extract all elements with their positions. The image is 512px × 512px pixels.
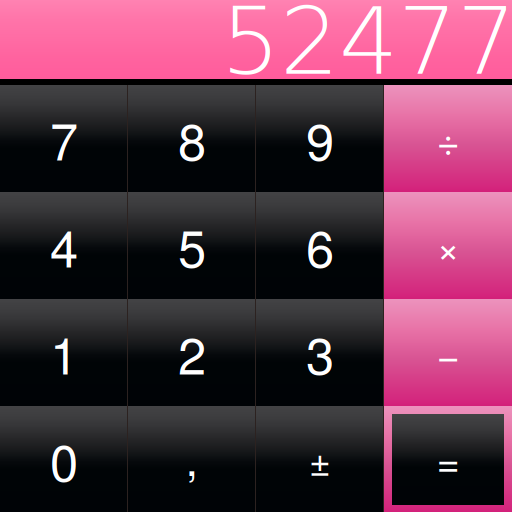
button[interactable]: ÷ bbox=[384, 85, 512, 192]
staticText: ± bbox=[309, 433, 331, 486]
button[interactable]: − bbox=[384, 299, 512, 406]
staticText: 9 bbox=[306, 102, 334, 175]
staticText: 2 bbox=[178, 316, 206, 389]
staticText: 0 bbox=[50, 423, 78, 496]
staticText: 8 bbox=[178, 102, 206, 175]
button[interactable]: 3 bbox=[256, 299, 384, 406]
button[interactable]: 2 bbox=[128, 299, 256, 406]
button[interactable]: 6 bbox=[256, 192, 384, 299]
button[interactable]: ± bbox=[256, 406, 384, 512]
staticText: 7 bbox=[50, 102, 78, 175]
button[interactable]: 9 bbox=[256, 85, 384, 192]
staticText: 52477 bbox=[221, 0, 512, 96]
button[interactable]: = bbox=[384, 406, 512, 512]
staticText: 5 bbox=[178, 209, 206, 282]
button[interactable]: 1 bbox=[0, 299, 128, 406]
button[interactable]: 5 bbox=[128, 192, 256, 299]
staticText: 3 bbox=[306, 316, 334, 389]
button[interactable]: , bbox=[128, 406, 256, 512]
button[interactable]: 0 bbox=[0, 406, 128, 512]
staticText: , bbox=[185, 424, 198, 489]
button[interactable]: 7 bbox=[0, 85, 128, 192]
button[interactable]: 4 bbox=[0, 192, 128, 299]
staticText: 1 bbox=[50, 316, 78, 389]
button[interactable]: × bbox=[384, 192, 512, 299]
staticText: 6 bbox=[306, 209, 334, 282]
staticText: − bbox=[436, 324, 459, 381]
staticText: = bbox=[436, 431, 459, 488]
staticText: × bbox=[436, 217, 459, 274]
button[interactable]: 8 bbox=[128, 85, 256, 192]
staticText: ÷ bbox=[436, 110, 459, 167]
staticText: 4 bbox=[50, 209, 78, 282]
